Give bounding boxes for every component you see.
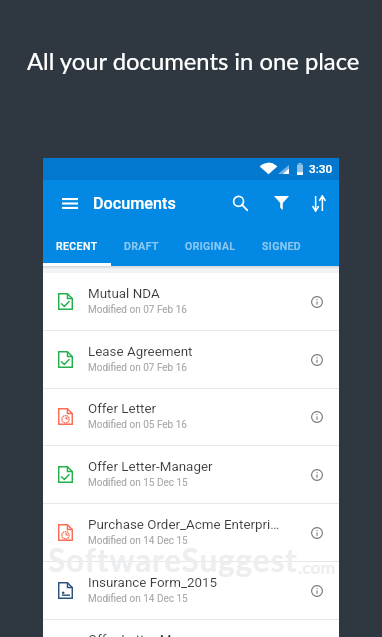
- staticText: ORIGINAL: [185, 240, 236, 252]
- button[interactable]: Mutual NDA: [43, 273, 339, 331]
- staticText: All your documents in one place: [27, 47, 360, 76]
- staticText: Modified on 05 Feb 16: [88, 419, 187, 431]
- staticText: Mutual NDA: [88, 286, 160, 302]
- staticText: Insurance Form_2015: [88, 575, 218, 591]
- button[interactable]: Sort: [300, 184, 338, 222]
- button[interactable]: ORIGINAL: [172, 226, 249, 266]
- button[interactable]: Offer Letter-Manager: [43, 619, 339, 637]
- staticText: Modified on 14 Dec 15: [88, 593, 188, 605]
- button[interactable]: Offer Letter: [43, 388, 339, 446]
- staticText: Lease Agreement: [88, 344, 193, 360]
- staticText: RECENT: [56, 240, 98, 252]
- staticText: 3:30: [309, 162, 333, 176]
- staticText: Modified on 07 Feb 16: [88, 362, 187, 374]
- staticText: Offer Letter-Manager: [88, 632, 213, 637]
- staticText: Modified on 14 Dec 15: [88, 535, 188, 547]
- staticText: Offer Letter: [88, 401, 157, 417]
- button[interactable]: Open navigation drawer: [54, 187, 86, 219]
- button[interactable]: Search: [221, 184, 259, 222]
- staticText: DRAFT: [124, 240, 159, 252]
- button[interactable]: Details: [294, 388, 339, 446]
- button[interactable]: Details: [294, 331, 339, 389]
- button[interactable]: Purchase Order_Acme Enterpri…: [43, 504, 339, 562]
- staticText: Offer Letter-Manager: [88, 459, 213, 475]
- button[interactable]: Offer Letter-Manager: [43, 446, 339, 504]
- button[interactable]: Details: [294, 619, 339, 637]
- button[interactable]: Filter: [262, 184, 300, 222]
- button[interactable]: RECENT: [43, 226, 111, 266]
- button[interactable]: Details: [294, 446, 339, 504]
- staticText: SIGNED: [262, 240, 302, 252]
- button[interactable]: SIGNED: [249, 226, 315, 266]
- staticText: .com: [298, 557, 336, 578]
- button[interactable]: Details: [294, 504, 339, 562]
- staticText: SoftwareSuggest: [48, 541, 298, 579]
- button[interactable]: Details: [294, 273, 339, 331]
- button[interactable]: DRAFT: [111, 226, 172, 266]
- button[interactable]: Details: [294, 562, 339, 620]
- staticText: Modified on 07 Feb 16: [88, 304, 187, 316]
- staticText: Purchase Order_Acme Enterpri…: [88, 517, 280, 533]
- button[interactable]: Lease Agreement: [43, 331, 339, 389]
- button[interactable]: Insurance Form_2015: [43, 562, 339, 620]
- staticText: Documents: [93, 194, 176, 213]
- staticText: Modified on 15 Dec 15: [88, 477, 188, 489]
